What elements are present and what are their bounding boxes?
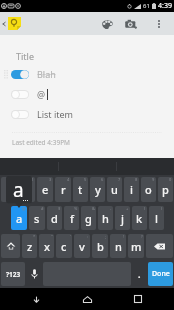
button[interactable]: Blah <box>0 64 174 84</box>
staticText: 6 <box>101 177 104 182</box>
staticText: * <box>33 234 36 239</box>
staticText: s <box>34 211 40 226</box>
button[interactable]: Voice input <box>27 262 41 286</box>
staticText: 2 <box>31 177 34 182</box>
staticText: Done <box>152 269 170 279</box>
staticText: 9 <box>152 177 155 182</box>
button[interactable]: h <box>98 206 113 230</box>
button[interactable]: q <box>1 177 17 202</box>
staticText: 8 <box>135 177 138 182</box>
button[interactable]: l <box>149 206 164 230</box>
button[interactable]: Home <box>72 288 102 310</box>
button[interactable]: Add image <box>119 12 143 35</box>
staticText: ) <box>161 206 163 211</box>
staticText: p <box>162 182 169 197</box>
staticText: ( <box>144 206 146 211</box>
button[interactable]: @ <box>0 84 174 104</box>
staticText: # <box>41 206 44 211</box>
staticText: Blah <box>37 68 56 80</box>
staticText: : <box>87 234 89 239</box>
button[interactable]: x <box>39 234 54 258</box>
staticText: m <box>131 239 142 254</box>
button[interactable]: k <box>132 206 147 230</box>
button[interactable]: Recent apps <box>123 288 153 310</box>
staticText: ?123 <box>6 270 21 279</box>
button[interactable]: e <box>37 177 53 202</box>
staticText: z <box>27 239 33 254</box>
staticText: d <box>51 211 58 226</box>
button[interactable]: f <box>64 206 79 230</box>
button[interactable]: j <box>115 206 130 230</box>
staticText: b <box>97 239 104 254</box>
staticText: u <box>111 182 118 197</box>
button[interactable]: w <box>19 177 35 202</box>
button[interactable]: Hide keyboard <box>21 288 51 310</box>
staticText: r <box>61 182 66 197</box>
button[interactable]: a <box>11 206 27 230</box>
staticText: $ <box>58 206 61 211</box>
button[interactable]: m <box>128 234 144 258</box>
button[interactable]: c <box>56 234 72 258</box>
staticText: 7 <box>118 177 121 182</box>
staticText: c <box>61 239 67 254</box>
button[interactable]: i <box>124 177 139 202</box>
staticText: k <box>136 211 143 226</box>
button[interactable]: d <box>47 206 62 230</box>
staticText: i <box>130 182 133 197</box>
button[interactable]: Navigate up <box>1 12 21 35</box>
staticText: e <box>42 182 49 197</box>
staticText: - <box>110 206 112 211</box>
button[interactable]: g <box>81 206 96 230</box>
staticText: @ <box>22 206 26 211</box>
staticText: a <box>16 211 23 226</box>
button[interactable]: n <box>110 234 126 258</box>
button[interactable]: ?123 <box>1 262 25 286</box>
staticText: List item <box>37 108 74 120</box>
button[interactable]: p <box>158 177 173 202</box>
button[interactable]: Change color <box>95 12 119 35</box>
staticText: . <box>138 268 141 280</box>
button[interactable]: u <box>107 177 122 202</box>
staticText: x <box>44 239 50 254</box>
button[interactable]: s <box>29 206 45 230</box>
staticText: 0 <box>169 177 172 182</box>
staticText: ; <box>105 234 107 239</box>
staticText: ! <box>123 234 125 239</box>
staticText: @ <box>37 88 46 100</box>
staticText: y <box>95 182 101 197</box>
staticText: j <box>121 211 124 226</box>
button[interactable]: List item <box>0 104 174 124</box>
button[interactable]: Done <box>148 262 173 286</box>
button[interactable]: v <box>74 234 90 258</box>
button[interactable]: o <box>141 177 156 202</box>
staticText: o <box>145 182 152 197</box>
button[interactable]: y <box>90 177 105 202</box>
button[interactable]: t <box>73 177 88 202</box>
button[interactable]: Shift <box>1 234 20 258</box>
staticText: v <box>79 239 85 254</box>
button[interactable]: . <box>133 262 146 286</box>
staticText: ' <box>70 234 71 239</box>
staticText: g <box>85 211 92 226</box>
staticText: f <box>70 211 74 226</box>
staticText: n <box>115 239 122 254</box>
button[interactable]: Delete <box>146 234 173 258</box>
button[interactable]: b <box>92 234 108 258</box>
button[interactable]: z <box>22 234 37 258</box>
staticText: " <box>51 234 53 239</box>
staticText: 3 <box>49 177 52 182</box>
button[interactable]: r <box>55 177 71 202</box>
staticText: 5 <box>84 177 87 182</box>
staticText: h <box>102 211 109 226</box>
staticText: ? <box>141 234 143 239</box>
staticText: a <box>13 177 24 203</box>
staticText: t <box>78 182 83 197</box>
button[interactable]: More options <box>143 12 174 35</box>
